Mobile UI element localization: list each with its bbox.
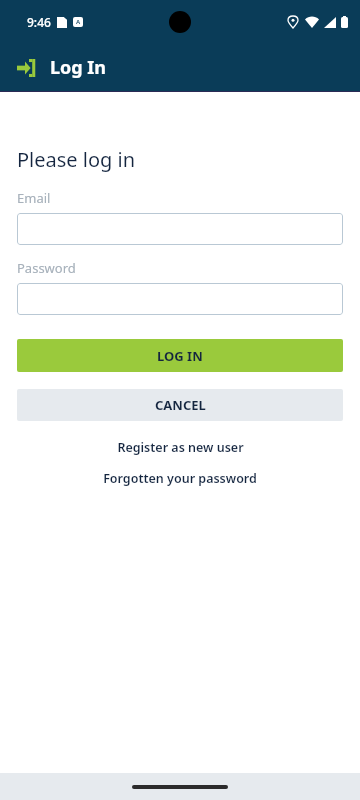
button[interactable]: [17, 213, 343, 245]
staticText: Forgotten your password: [103, 470, 257, 487]
button[interactable]: Forgotten your password: [17, 470, 343, 487]
staticText: Please log in: [17, 146, 136, 173]
staticText: A: [76, 18, 81, 26]
button[interactable]: LOG IN: [17, 339, 343, 372]
button[interactable]: Log in: [14, 55, 40, 81]
button[interactable]: CANCEL: [17, 389, 343, 421]
staticText: Email: [17, 189, 51, 207]
staticText: Register as new user: [117, 439, 244, 456]
staticText: CANCEL: [155, 396, 206, 414]
staticText: Log In: [50, 55, 107, 80]
button[interactable]: [17, 283, 343, 315]
staticText: LOG IN: [157, 347, 203, 365]
button[interactable]: Register as new user: [17, 439, 343, 456]
staticText: 9:46: [27, 14, 51, 30]
staticText: Password: [17, 259, 76, 277]
